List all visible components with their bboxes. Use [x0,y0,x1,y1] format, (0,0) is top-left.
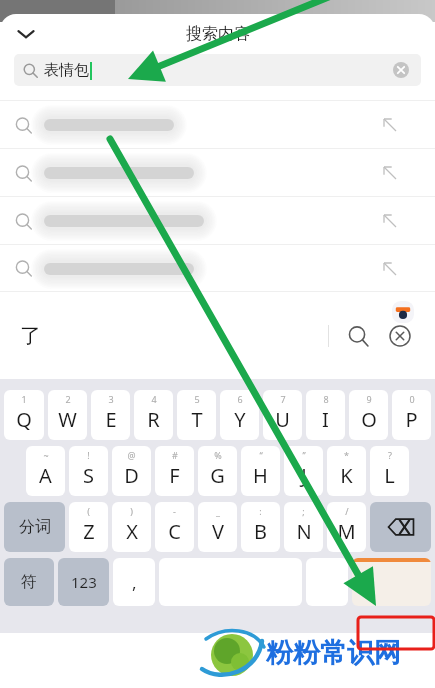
button[interactable]: Fill search [0,197,435,245]
staticText: R [147,406,160,433]
staticText: U [275,406,290,433]
button[interactable]: 了 [10,316,50,356]
button[interactable]: _ [198,502,237,552]
button[interactable]: Backspace [370,502,431,552]
button[interactable]: 5 [177,390,216,440]
button[interactable]: ) [112,502,151,552]
button[interactable]: Enter [352,558,431,606]
staticText: ) [130,505,133,517]
staticText: D [124,462,139,489]
button[interactable]: Fill search [378,209,402,233]
staticText: 分词 [19,517,51,537]
button[interactable]: 8 [306,390,345,440]
button[interactable]: / [327,502,366,552]
staticText: 9 [366,393,372,405]
staticText: M [337,518,356,545]
button[interactable]: @ [112,446,151,496]
button[interactable]: 2 [48,390,87,440]
staticText: C [168,518,181,545]
button[interactable]: * [327,446,366,496]
button[interactable]: Fill search [0,245,435,292]
staticText: 0 [409,393,415,405]
button[interactable]: Close keyboard [383,319,417,353]
button[interactable]: 3 [91,390,130,440]
button[interactable]: Clear [389,58,413,82]
staticText: I [322,406,329,433]
button[interactable]: : [241,502,280,552]
button[interactable]: 1 [4,390,44,440]
button[interactable]: 0 [392,390,431,440]
button[interactable]: 6 [220,390,259,440]
staticText: 5 [194,393,200,405]
button[interactable]: 4 [134,390,173,440]
staticText: - [173,505,176,517]
button[interactable]: ” [284,446,323,496]
staticText: H [253,462,268,489]
button[interactable]: # [155,446,194,496]
button[interactable]: Fill search [0,149,435,197]
button[interactable]: Fill search [378,161,402,185]
staticText: ! [87,449,90,461]
staticText: 了 [20,323,41,349]
staticText: 8 [323,393,329,405]
button[interactable]: 分词 [4,502,65,552]
staticText: 3 [108,393,114,405]
staticText: V [212,518,224,545]
staticText: 6 [237,393,243,405]
button[interactable]: Fill search [0,101,435,149]
button[interactable]: 7 [263,390,302,440]
staticText: A [39,462,52,489]
staticText: B [254,518,267,545]
staticText: 7 [280,393,286,405]
staticText: ( [87,505,90,517]
button[interactable]: Fill search [378,113,402,137]
staticText: 搜索内容 [186,24,250,44]
button[interactable]: Search [341,319,375,353]
button[interactable]: 9 [349,390,388,440]
staticText: ? [388,449,392,461]
staticText: 粉粉常识网 [266,636,401,670]
button[interactable]: ! [69,446,108,496]
staticText: K [340,462,353,489]
staticText: ; [302,505,305,517]
staticText: T [191,406,203,433]
staticText: , [132,571,137,594]
staticText: ” [302,449,306,461]
staticText: Q [16,406,32,433]
button[interactable]: % [198,446,237,496]
staticText: 表情包 [44,61,89,80]
staticText: J [301,462,307,489]
staticText: _ [216,505,220,517]
staticText: 符 [21,572,37,592]
button[interactable]: ? [370,446,409,496]
staticText: : [259,505,262,517]
staticText: X [126,518,138,545]
staticText: 123 [71,572,97,592]
button[interactable]: Period [306,558,348,606]
staticText: “ [259,449,263,461]
button[interactable]: Stickers [391,300,415,324]
button[interactable]: Fill search [378,257,402,281]
staticText: N [296,518,312,545]
button[interactable]: , [113,558,155,606]
staticText: 2 [65,393,71,405]
button[interactable]: “ [241,446,280,496]
staticText: P [405,406,418,433]
staticText: F [169,462,180,489]
button[interactable]: - [155,502,194,552]
staticText: O [361,406,377,433]
button[interactable]: 符 [4,558,54,606]
staticText: 4 [151,393,157,405]
staticText: Z [83,518,95,545]
button[interactable]: 表情包 [14,54,421,86]
button[interactable]: 123 [58,558,109,606]
button[interactable]: ~ [26,446,65,496]
button[interactable]: Collapse [8,16,44,52]
staticText: E [105,406,117,433]
staticText: # [172,449,178,461]
button[interactable]: ( [69,502,108,552]
staticText: L [384,462,395,489]
button[interactable]: ; [284,502,323,552]
staticText: G [210,462,225,489]
